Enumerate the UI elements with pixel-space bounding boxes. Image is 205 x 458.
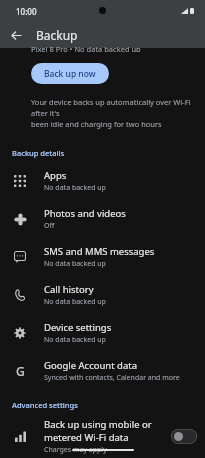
button[interactable]: Device settings: [0, 314, 205, 352]
button[interactable]: Back up using mobile data toggle: [171, 429, 197, 444]
staticText: Advanced settings: [12, 400, 78, 410]
button[interactable]: Back: [5, 24, 27, 46]
staticText: Your device backs up automatically over …: [31, 97, 199, 129]
staticText: Apps: [44, 169, 67, 182]
button[interactable]: G: [0, 352, 205, 390]
staticText: Back up using mobile or metered Wi-Fi da…: [44, 418, 152, 444]
staticText: Pixel 8 Pro • No data backed up: [31, 44, 141, 52]
button[interactable]: Photos and videos: [0, 200, 205, 238]
button[interactable]: Back up using mobile or metered Wi-Fi da…: [0, 414, 205, 458]
staticText: G: [16, 363, 25, 379]
button[interactable]: Call history: [0, 276, 205, 314]
staticText: Back up now: [44, 68, 96, 80]
staticText: SMS and MMS messages: [44, 245, 155, 258]
staticText: Synced with contacts, Calendar and more: [44, 373, 180, 383]
staticText: 10:00: [16, 6, 37, 17]
staticText: No data backed up: [44, 183, 106, 193]
staticText: Google Account data: [44, 359, 138, 372]
staticText: Backup details: [12, 148, 65, 158]
staticText: No data backed up: [44, 259, 106, 269]
staticText: No data backed up: [44, 335, 106, 345]
staticText: Charges may apply: [44, 445, 107, 455]
staticText: Device settings: [44, 321, 112, 334]
button[interactable]: SMS and MMS messages: [0, 238, 205, 276]
staticText: No data backed up: [44, 297, 106, 307]
staticText: Photos and videos: [44, 207, 126, 220]
staticText: Off: [44, 221, 55, 231]
button[interactable]: Apps: [0, 162, 205, 200]
staticText: Backup: [36, 27, 78, 43]
button[interactable]: Back up now: [31, 63, 109, 84]
staticText: Call history: [44, 283, 94, 296]
